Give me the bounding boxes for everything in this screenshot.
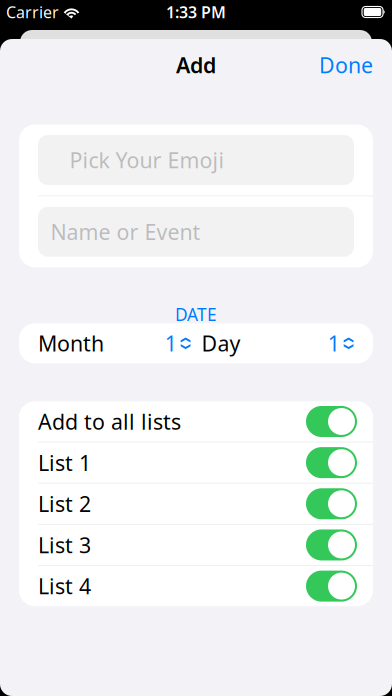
button[interactable]: 1	[328, 325, 353, 361]
staticText: Pick Your Emoji	[69, 146, 224, 174]
staticText: Carrier	[6, 1, 59, 23]
button[interactable]: Add to all lists	[19, 401, 373, 442]
staticText: List 3	[38, 531, 91, 559]
button[interactable]: List 4	[19, 566, 373, 606]
button[interactable]: 1	[165, 325, 190, 361]
staticText: List 1	[38, 448, 91, 477]
button[interactable]: Pick Your Emoji	[19, 124, 373, 195]
button[interactable]: List 3	[19, 525, 373, 565]
staticText: 1:33 PM	[166, 1, 226, 23]
staticText: Name or Event	[50, 218, 200, 246]
staticText: List 2	[38, 490, 91, 518]
staticText: Done	[319, 51, 373, 79]
button[interactable]: List 2	[19, 484, 373, 524]
staticText: DATE	[175, 303, 217, 326]
button[interactable]: List 1	[19, 442, 373, 483]
staticText: Add to all lists	[38, 407, 181, 436]
staticText: 1	[165, 329, 177, 357]
button[interactable]: Done	[319, 45, 373, 85]
button[interactable]: Name or Event	[19, 196, 373, 267]
staticText: List 4	[38, 572, 91, 600]
staticText: Day	[201, 329, 240, 357]
staticText: Add	[176, 51, 216, 79]
staticText: 1	[328, 329, 340, 357]
staticText: Month	[38, 329, 104, 357]
